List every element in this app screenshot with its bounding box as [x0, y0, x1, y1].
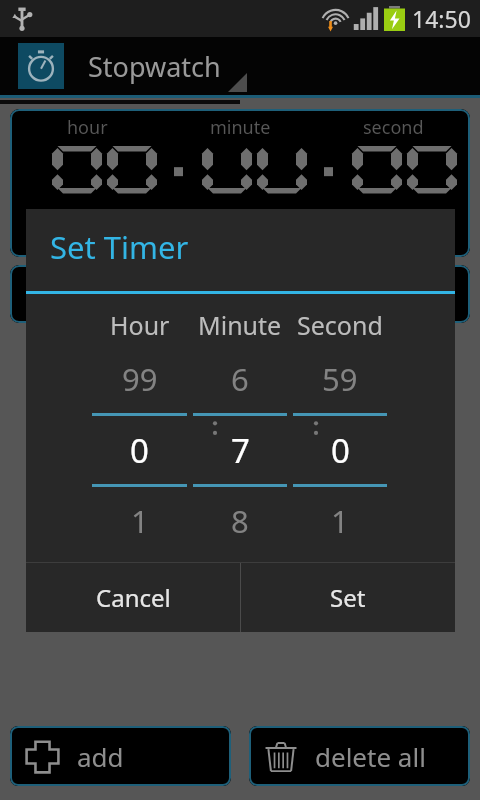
other: USB connected — [9, 6, 35, 32]
staticText: Cancel — [96, 581, 171, 614]
staticText: 1 — [331, 500, 349, 542]
staticText: Stopwatch — [88, 48, 221, 85]
button[interactable]: 59 — [290, 358, 390, 542]
staticText: Hour — [110, 308, 170, 342]
staticText: 0 — [331, 428, 350, 473]
staticText: 8 — [231, 500, 249, 542]
staticText: minute — [210, 115, 271, 140]
button[interactable]: 6 — [190, 358, 290, 542]
staticText: Set Timer — [50, 226, 189, 268]
staticText: 14:50 — [412, 3, 471, 34]
staticText: second — [363, 115, 424, 140]
staticText: 59 — [322, 358, 358, 400]
button[interactable]: 99 — [89, 358, 190, 542]
button[interactable]: Set — [241, 563, 455, 632]
staticText: 99 — [122, 358, 158, 400]
staticText: Minute — [198, 308, 282, 342]
button[interactable]: delete all — [249, 726, 470, 786]
button[interactable]: More options — [228, 73, 247, 92]
staticText: 7 — [231, 428, 250, 473]
staticText: Second — [297, 308, 383, 342]
staticText: Set — [330, 581, 366, 614]
staticText: 0 — [130, 428, 149, 473]
staticText: 6 — [231, 358, 249, 400]
button[interactable]: Stopwatch app icon — [18, 43, 64, 89]
button[interactable]: add — [10, 726, 231, 786]
staticText: add — [77, 739, 124, 774]
staticText: delete all — [315, 739, 426, 774]
staticText: 1 — [131, 500, 149, 542]
button[interactable]: Cancel — [26, 563, 240, 632]
staticText: hour — [67, 115, 108, 140]
